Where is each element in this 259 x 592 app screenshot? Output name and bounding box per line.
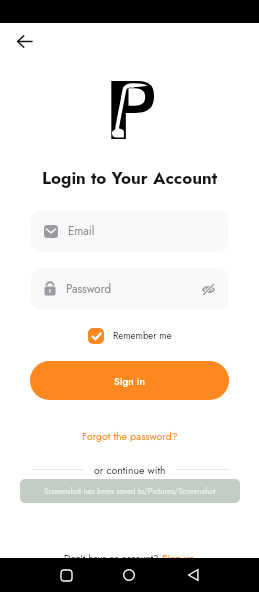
staticText: Don't have an account? (64, 552, 162, 566)
button[interactable]: Show password (201, 282, 216, 297)
staticText: Sign in (114, 374, 145, 388)
staticText: Login to Your Account (42, 166, 218, 191)
button[interactable]: Forgot the password? (82, 429, 178, 444)
staticText: Sign up (162, 552, 195, 566)
button[interactable]: Remember me (88, 328, 172, 344)
staticText: Screenshot has been saved to/Pictures/Sc… (44, 485, 216, 497)
button[interactable]: Go back (180, 558, 206, 592)
button[interactable]: Sign in (30, 361, 229, 400)
staticText: Forgot the password? (82, 429, 178, 444)
button[interactable]: Back (8, 25, 40, 57)
button[interactable]: Email (31, 210, 228, 252)
button[interactable]: Sign up (162, 552, 195, 566)
staticText: or continue with (94, 463, 166, 475)
staticText: Remember me (113, 329, 172, 343)
button[interactable]: Home (116, 558, 142, 592)
staticText: Email (68, 223, 216, 240)
staticText: Password (66, 281, 201, 298)
button[interactable]: Recents (53, 558, 79, 592)
button[interactable]: Password (31, 268, 228, 310)
